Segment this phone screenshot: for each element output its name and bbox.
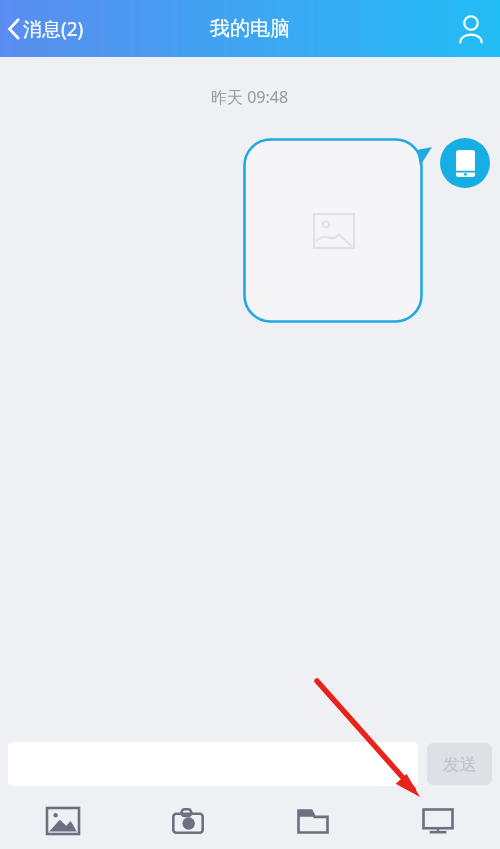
- button[interactable]: 消息(2): [0, 0, 94, 57]
- button[interactable]: 发送: [427, 743, 492, 785]
- button[interactable]: Files: [250, 792, 375, 849]
- button[interactable]: Profile: [442, 0, 500, 57]
- button[interactable]: [8, 742, 418, 786]
- staticText: 昨天 09:48: [211, 86, 289, 108]
- staticText: 我的电脑: [210, 16, 290, 41]
- button[interactable]: Screen: [375, 792, 500, 849]
- button[interactable]: Camera: [125, 792, 250, 849]
- button[interactable]: [243, 138, 432, 323]
- button[interactable]: Device avatar: [440, 138, 490, 188]
- staticText: 发送: [443, 754, 477, 775]
- staticText: 消息(2): [23, 16, 84, 42]
- button[interactable]: Gallery: [0, 792, 125, 849]
